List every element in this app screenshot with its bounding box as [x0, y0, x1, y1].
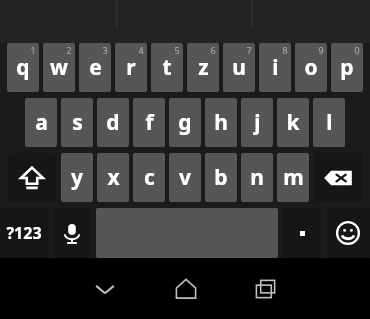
button[interactable]: v: [169, 153, 201, 202]
button[interactable]: f: [133, 98, 165, 147]
staticText: j: [254, 108, 261, 137]
staticText: x: [107, 163, 120, 192]
staticText: 3: [102, 44, 108, 56]
staticText: r: [126, 53, 136, 82]
staticText: 4: [138, 44, 144, 56]
button[interactable]: c: [133, 153, 165, 202]
staticText: h: [214, 108, 228, 137]
button[interactable]: w: [43, 43, 75, 92]
staticText: y: [71, 163, 83, 192]
button[interactable]: g: [169, 98, 201, 147]
button[interactable]: Hide keyboard: [85, 269, 125, 309]
button[interactable]: i: [259, 43, 291, 92]
button[interactable]: q: [7, 43, 39, 92]
button[interactable]: b: [205, 153, 237, 202]
staticText: 6: [210, 44, 216, 56]
staticText: 9: [318, 44, 324, 56]
button[interactable]: [283, 208, 321, 258]
staticText: s: [72, 108, 83, 137]
staticText: w: [50, 53, 68, 82]
button[interactable]: l: [313, 98, 345, 147]
button[interactable]: h: [205, 98, 237, 147]
button[interactable]: p: [331, 43, 363, 92]
button[interactable]: z: [187, 43, 219, 92]
button[interactable]: r: [115, 43, 147, 92]
staticText: i: [272, 53, 279, 82]
staticText: p: [340, 53, 354, 82]
staticText: g: [178, 108, 192, 137]
staticText: ?123: [6, 222, 42, 244]
staticText: e: [89, 53, 102, 82]
button[interactable]: Shift: [8, 153, 56, 202]
button[interactable]: j: [241, 98, 273, 147]
staticText: b: [214, 163, 228, 192]
button[interactable]: m: [277, 153, 309, 202]
staticText: d: [106, 108, 120, 137]
staticText: m: [283, 163, 304, 192]
button[interactable]: s: [61, 98, 93, 147]
staticText: 7: [246, 44, 252, 56]
staticText: o: [304, 53, 318, 82]
button[interactable]: y: [61, 153, 93, 202]
button[interactable]: o: [295, 43, 327, 92]
button[interactable]: u: [223, 43, 255, 92]
staticText: u: [232, 53, 246, 82]
staticText: k: [286, 108, 300, 137]
staticText: c: [144, 163, 155, 192]
staticText: f: [145, 108, 154, 137]
button[interactable]: Backspace: [314, 153, 362, 202]
staticText: a: [35, 108, 48, 137]
button[interactable]: t: [151, 43, 183, 92]
staticText: t: [162, 53, 172, 82]
button[interactable]: Voice input: [53, 208, 91, 258]
button[interactable]: Recent apps: [246, 269, 286, 309]
staticText: 1: [30, 44, 36, 56]
button[interactable]: ?123: [0, 208, 48, 258]
button[interactable]: k: [277, 98, 309, 147]
staticText: q: [16, 53, 30, 82]
staticText: n: [250, 163, 264, 192]
staticText: 0: [354, 44, 360, 56]
button[interactable]: a: [25, 98, 57, 147]
staticText: 5: [174, 44, 180, 56]
button[interactable]: x: [97, 153, 129, 202]
staticText: l: [326, 108, 333, 137]
staticText: 2: [66, 44, 72, 56]
button[interactable]: d: [97, 98, 129, 147]
staticText: 8: [282, 44, 288, 56]
button[interactable]: Emoji: [326, 208, 370, 258]
button[interactable]: e: [79, 43, 111, 92]
button[interactable]: n: [241, 153, 273, 202]
staticText: z: [198, 53, 209, 82]
staticText: v: [179, 163, 191, 192]
button[interactable]: Home: [166, 269, 206, 309]
